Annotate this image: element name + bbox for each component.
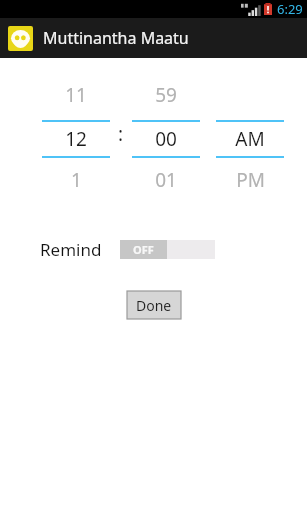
- staticText: Done: [136, 296, 172, 315]
- staticText: Remind: [40, 238, 102, 261]
- staticText: 1: [71, 167, 82, 193]
- button[interactable]: Remind toggle, off: [120, 240, 215, 259]
- button[interactable]: AM: [214, 80, 286, 194]
- button[interactable]: 11: [40, 80, 112, 194]
- staticText: 01: [155, 167, 177, 193]
- staticText: 6:29: [277, 0, 303, 18]
- staticText: AM: [235, 126, 265, 152]
- button[interactable]: 59: [130, 80, 202, 194]
- staticText: 12: [65, 126, 87, 152]
- staticText: Muttinantha Maatu: [43, 27, 189, 49]
- staticText: PM: [236, 167, 265, 193]
- button[interactable]: Done: [127, 291, 181, 319]
- staticText: 00: [155, 126, 177, 152]
- staticText: :: [118, 121, 124, 147]
- staticText: 59: [155, 82, 177, 108]
- staticText: 11: [65, 82, 87, 108]
- staticText: OFF: [133, 242, 154, 257]
